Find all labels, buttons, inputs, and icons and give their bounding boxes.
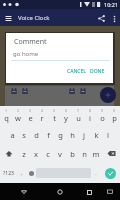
staticText: u <box>76 113 81 123</box>
button[interactable]: Backspace <box>102 144 120 163</box>
button[interactable]: 2 <box>12 106 24 125</box>
staticText: k <box>94 130 99 140</box>
staticText: 7 <box>77 108 80 113</box>
staticText: 1 <box>5 108 8 113</box>
staticText: j <box>83 130 85 140</box>
staticText: d <box>34 130 39 140</box>
staticText: l <box>107 130 109 140</box>
button[interactable]: 6 <box>60 106 72 125</box>
button[interactable] <box>0 87 60 95</box>
button[interactable]: Hide keyboard <box>104 186 115 197</box>
button[interactable]: Recent apps <box>83 186 95 198</box>
button[interactable]: j <box>78 125 90 144</box>
button[interactable]: 1 <box>0 106 12 125</box>
button[interactable]: Add alarm <box>100 87 116 103</box>
button[interactable]: CANCEL <box>64 66 89 77</box>
staticText: n <box>82 149 87 159</box>
button[interactable]: 5 <box>48 106 60 125</box>
button[interactable]: g <box>54 125 66 144</box>
staticText: z <box>22 149 26 159</box>
button[interactable]: 3 <box>24 106 36 125</box>
button[interactable]: ?123 <box>0 163 17 183</box>
button[interactable]: Emoji <box>27 163 36 183</box>
button[interactable]: d <box>30 125 42 144</box>
staticText: b <box>70 149 75 159</box>
button[interactable]: Navigation menu <box>2 12 14 24</box>
staticText: g <box>58 130 63 140</box>
staticText: c <box>46 149 50 159</box>
staticText: y <box>64 113 68 123</box>
staticText: CANCEL <box>67 68 86 75</box>
staticText: Comment <box>14 37 47 47</box>
staticText: ?123 <box>3 170 14 177</box>
staticText: 0 <box>113 108 116 113</box>
staticText: x <box>34 149 38 159</box>
staticText: e <box>28 113 33 123</box>
button[interactable]: Share <box>94 11 108 25</box>
staticText: DONE <box>90 68 105 75</box>
button[interactable]: z <box>18 144 30 163</box>
staticText: 5 <box>53 108 56 113</box>
staticText: i <box>89 113 91 123</box>
staticText: Voice Clock <box>18 14 50 22</box>
button[interactable]: f <box>42 125 54 144</box>
button[interactable]: c <box>42 144 54 163</box>
staticText: . <box>95 170 97 177</box>
button[interactable]: Back <box>18 186 30 198</box>
button[interactable]: 8 <box>84 106 96 125</box>
button[interactable] <box>60 87 120 95</box>
staticText: m <box>92 149 100 159</box>
staticText: f <box>47 130 50 140</box>
staticText: a <box>10 130 15 140</box>
button[interactable]: Shift <box>0 144 18 163</box>
button[interactable]: 0 <box>108 106 120 125</box>
staticText: go home <box>13 50 39 58</box>
button[interactable]: b <box>66 144 78 163</box>
staticText: q <box>4 113 9 123</box>
button[interactable]: m <box>90 144 102 163</box>
button[interactable]: k <box>90 125 102 144</box>
staticText: 9 <box>101 108 104 113</box>
staticText: , <box>21 170 23 177</box>
staticText: v <box>58 149 62 159</box>
staticText: 3 <box>29 108 32 113</box>
staticText: 8 <box>89 108 92 113</box>
button[interactable]: Home <box>54 186 66 198</box>
button[interactable]: n <box>78 144 90 163</box>
staticText: p <box>112 113 117 123</box>
button[interactable]: 9 <box>96 106 108 125</box>
staticText: s <box>22 130 26 140</box>
button[interactable]: 7 <box>72 106 84 125</box>
staticText: r <box>40 113 44 123</box>
staticText: 6 <box>65 108 68 113</box>
button[interactable]: 4 <box>36 106 48 125</box>
button[interactable]: More options <box>108 12 120 24</box>
button[interactable]: a <box>6 125 18 144</box>
staticText: 2 <box>17 108 20 113</box>
button[interactable]: Enter <box>105 168 116 179</box>
button[interactable]: s <box>18 125 30 144</box>
staticText: h <box>70 130 75 140</box>
button[interactable]: , <box>17 163 27 183</box>
button[interactable]: l <box>102 125 114 144</box>
button[interactable]: DONE <box>87 66 108 77</box>
button[interactable]: x <box>30 144 42 163</box>
staticText: w <box>15 113 21 123</box>
button[interactable]: v <box>54 144 66 163</box>
staticText: o <box>100 113 105 123</box>
staticText: t <box>53 113 56 123</box>
staticText: 4 <box>41 108 44 113</box>
button[interactable]: h <box>66 125 78 144</box>
staticText: 10:21 <box>104 1 119 8</box>
